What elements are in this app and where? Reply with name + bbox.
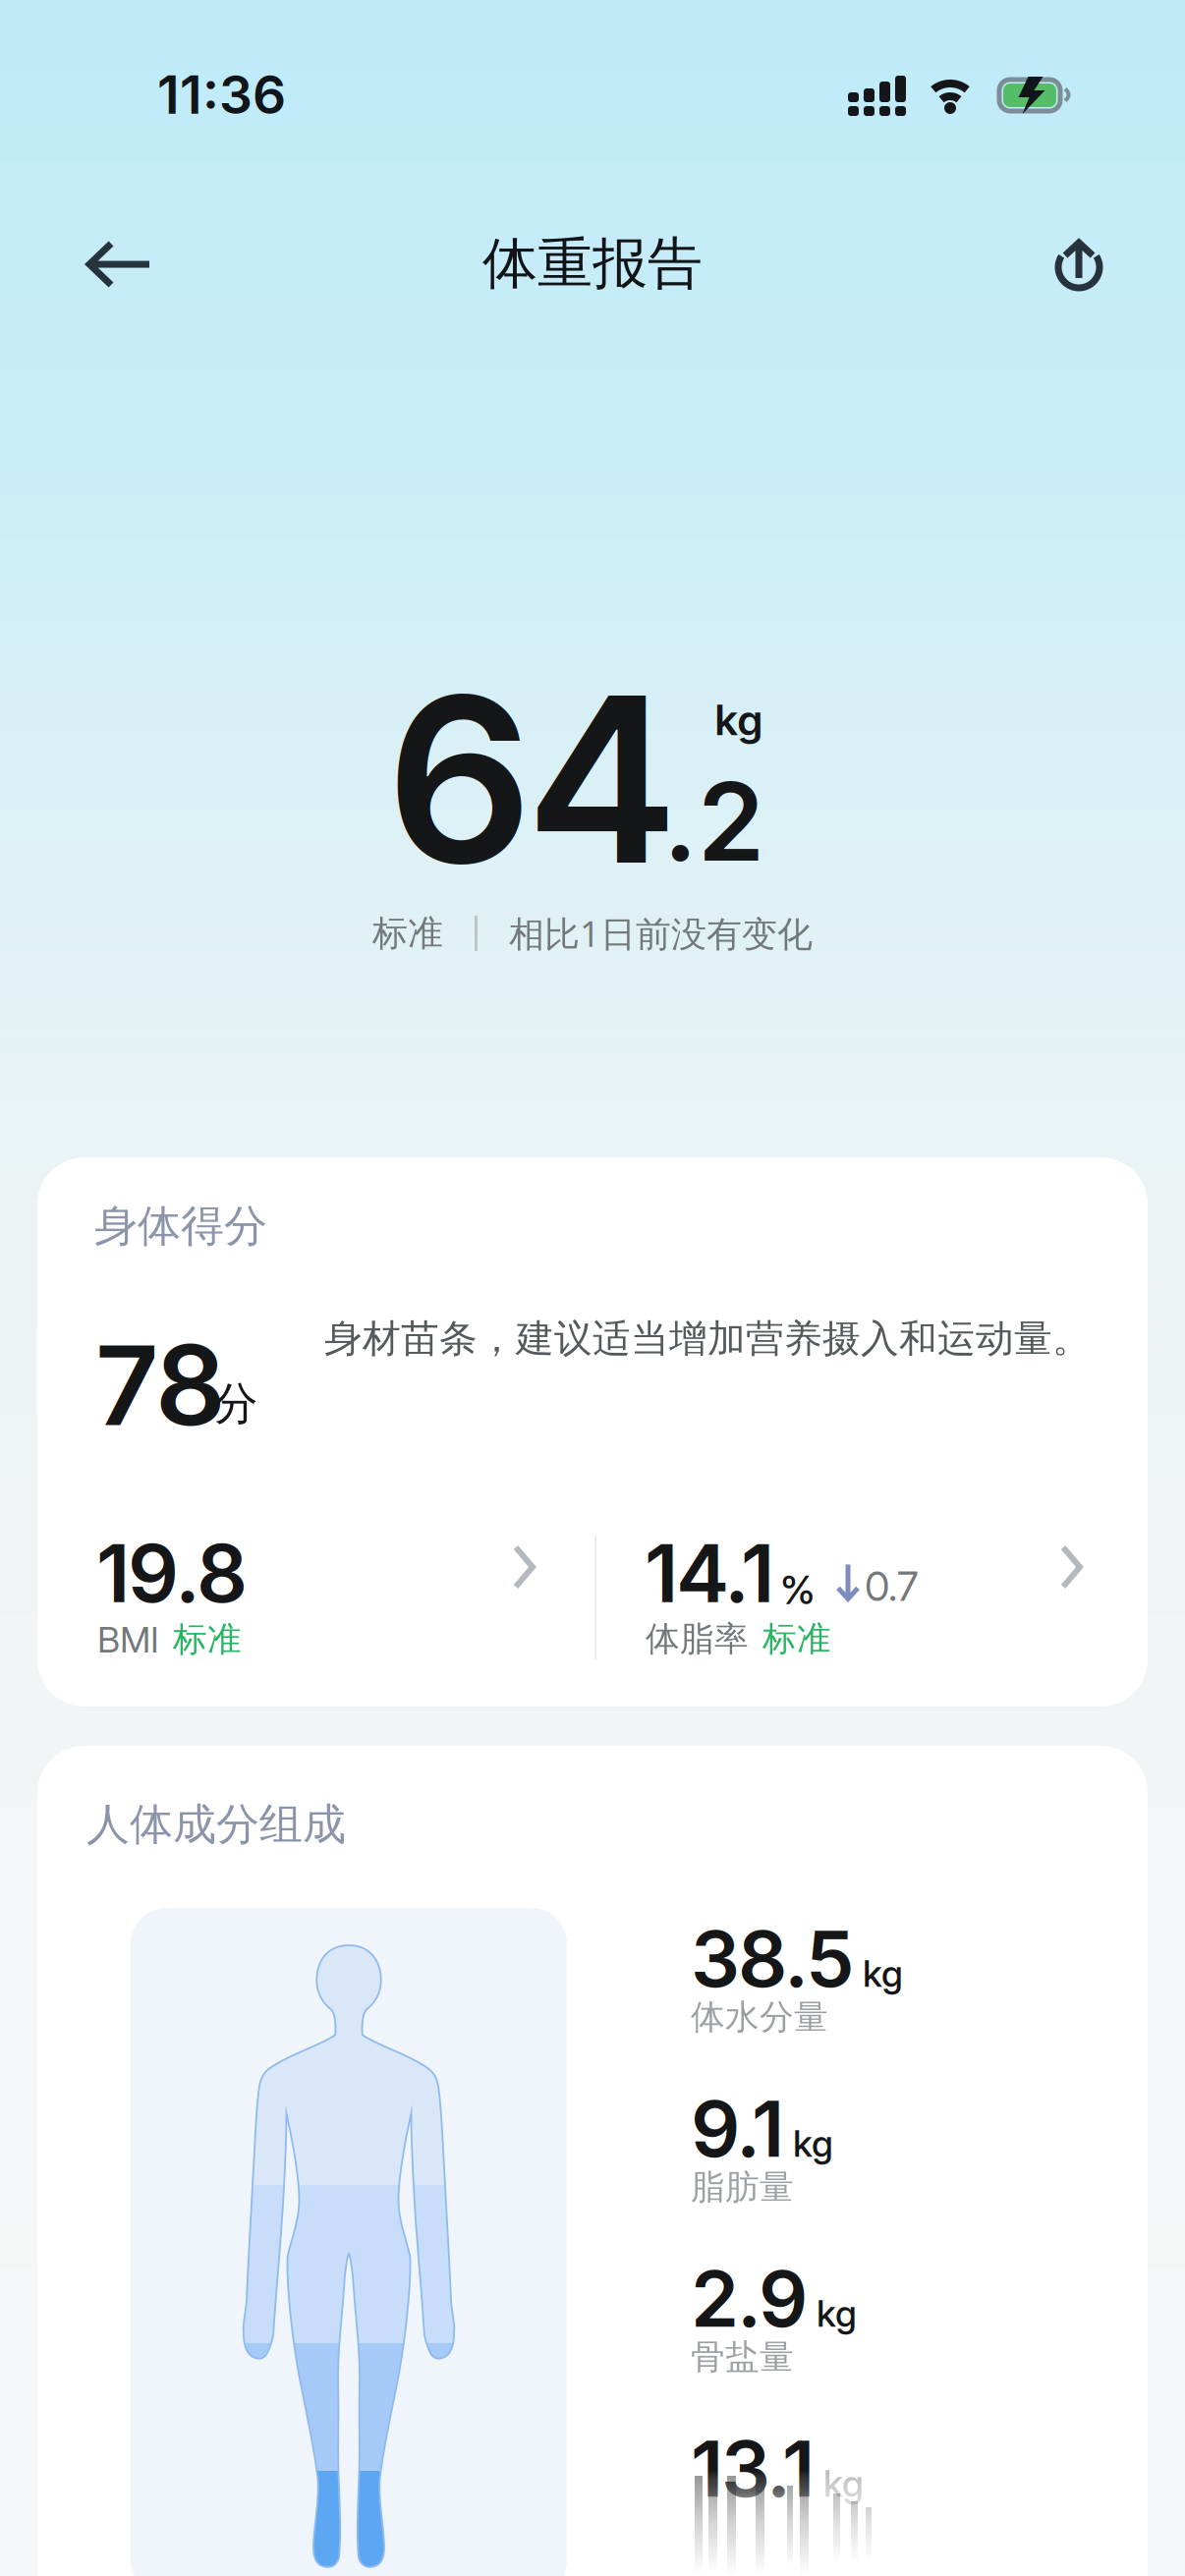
- staticText: 0.7: [865, 1562, 918, 1611]
- staticText: 标准: [173, 1619, 242, 1660]
- staticText: 13.1: [691, 2422, 815, 2515]
- staticText: 人体成分组成: [86, 1798, 346, 1851]
- staticText: 64: [386, 641, 678, 918]
- button[interactable]: BMI 19.8 标准: [96, 1525, 607, 1702]
- staticText: BMI: [97, 1618, 159, 1661]
- staticText: 分: [213, 1376, 257, 1431]
- staticText: %: [780, 1566, 816, 1614]
- button[interactable]: 体脂率 14.1% 标准: [645, 1525, 1106, 1702]
- staticText: 38.5: [691, 1912, 854, 2005]
- staticText: .2: [663, 756, 764, 886]
- staticText: 19.8: [96, 1525, 248, 1621]
- staticText: 身材苗条，建议适当增加营养摄入和运动量。: [324, 1316, 1091, 1362]
- staticText: kg: [793, 2121, 833, 2166]
- staticText: 体重报告: [482, 230, 703, 297]
- staticText: 标准: [372, 912, 443, 955]
- staticText: 78: [95, 1318, 226, 1452]
- staticText: 2.9: [691, 2252, 808, 2345]
- staticText: 9.1: [691, 2082, 784, 2175]
- staticText: kg: [714, 695, 763, 745]
- staticText: 体水分量: [691, 1996, 828, 2038]
- staticText: 标准: [762, 1618, 831, 1660]
- staticText: 身体得分: [94, 1200, 267, 1253]
- staticText: 体脂率: [646, 1618, 749, 1660]
- button[interactable]: Back: [63, 217, 175, 311]
- staticText: 11:36: [157, 63, 286, 126]
- staticText: 骨盐量: [691, 2336, 794, 2378]
- staticText: 脂肪量: [691, 2166, 794, 2208]
- button[interactable]: Share: [1031, 215, 1127, 313]
- staticText: 相比1日前没有变化: [509, 910, 813, 957]
- staticText: kg: [863, 1951, 903, 1996]
- staticText: kg: [823, 2461, 864, 2505]
- staticText: kg: [817, 2291, 857, 2335]
- staticText: 14.1: [645, 1525, 774, 1621]
